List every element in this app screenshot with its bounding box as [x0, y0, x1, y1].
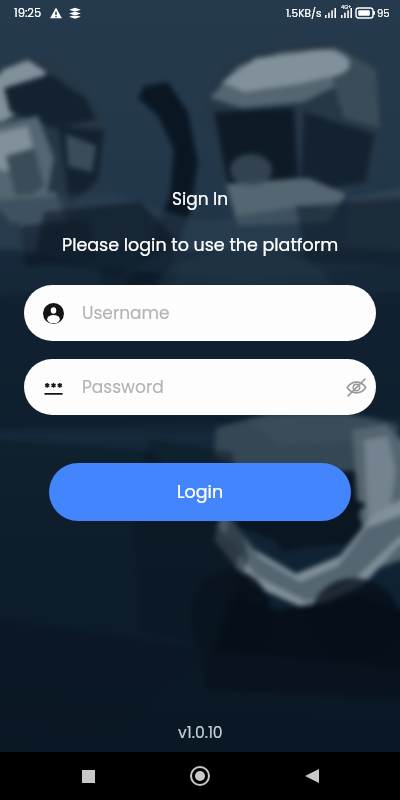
staticText: 1.5KB/s: [286, 6, 322, 21]
staticText: 95: [377, 6, 390, 20]
staticText: Please login to use the platform: [62, 233, 339, 258]
button[interactable]: Username: [24, 285, 376, 341]
button[interactable]: Home: [176, 752, 224, 800]
button[interactable]: Login: [49, 463, 351, 521]
staticText: v1.0.10: [178, 722, 223, 744]
button[interactable]: Show password: [340, 371, 372, 403]
button[interactable]: Password: [24, 359, 376, 415]
staticText: Login: [177, 480, 224, 505]
staticText: 19:25: [14, 5, 42, 21]
staticText: Sign In: [172, 187, 229, 211]
button[interactable]: Recent apps: [64, 752, 112, 800]
staticText: Password: [82, 375, 340, 399]
button[interactable]: Back: [288, 752, 336, 800]
staticText: Username: [82, 301, 170, 325]
staticText: 4G+: [341, 4, 352, 11]
